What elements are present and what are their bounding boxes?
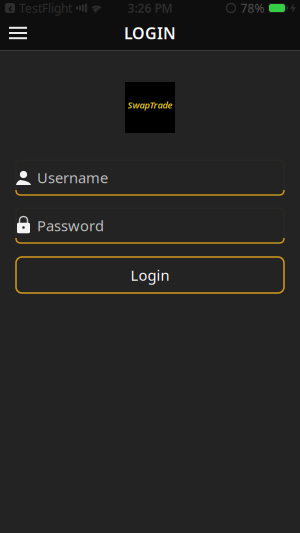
button[interactable]: Login — [16, 257, 284, 293]
staticText: 78% — [240, 0, 264, 16]
button[interactable]: Password — [16, 208, 284, 243]
staticText: LOGIN — [124, 22, 176, 44]
staticText: ‹ — [8, 0, 12, 15]
staticText: Password — [37, 216, 104, 235]
staticText: SwapTrade — [127, 99, 172, 111]
staticText: Username — [37, 168, 108, 187]
staticText: Login — [130, 265, 169, 285]
staticText: TestFlight — [19, 0, 72, 16]
button[interactable]: Username — [16, 160, 284, 195]
button[interactable]: Menu — [0, 19, 27, 47]
staticText: 3:26 PM — [127, 0, 172, 16]
